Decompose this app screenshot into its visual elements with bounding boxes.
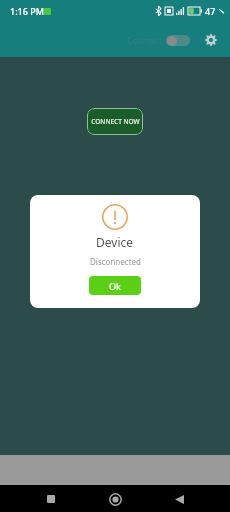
staticText: Device xyxy=(96,234,134,250)
staticText: Connect xyxy=(127,34,162,46)
button[interactable]: Ok xyxy=(89,276,141,295)
staticText: Ok xyxy=(109,280,121,292)
button[interactable]: Back xyxy=(166,486,192,512)
staticText: 1:16 PM xyxy=(10,5,44,17)
button[interactable]: Recent apps xyxy=(38,486,64,512)
button[interactable]: Settings xyxy=(200,29,222,51)
button[interactable]: CONNECT NOW xyxy=(87,108,143,135)
button[interactable]: Connect xyxy=(125,32,192,48)
staticText: CONNECT NOW xyxy=(91,117,140,126)
staticText: Disconnected xyxy=(90,256,141,267)
staticText: 47 xyxy=(205,5,216,17)
button[interactable]: Home xyxy=(102,486,128,512)
